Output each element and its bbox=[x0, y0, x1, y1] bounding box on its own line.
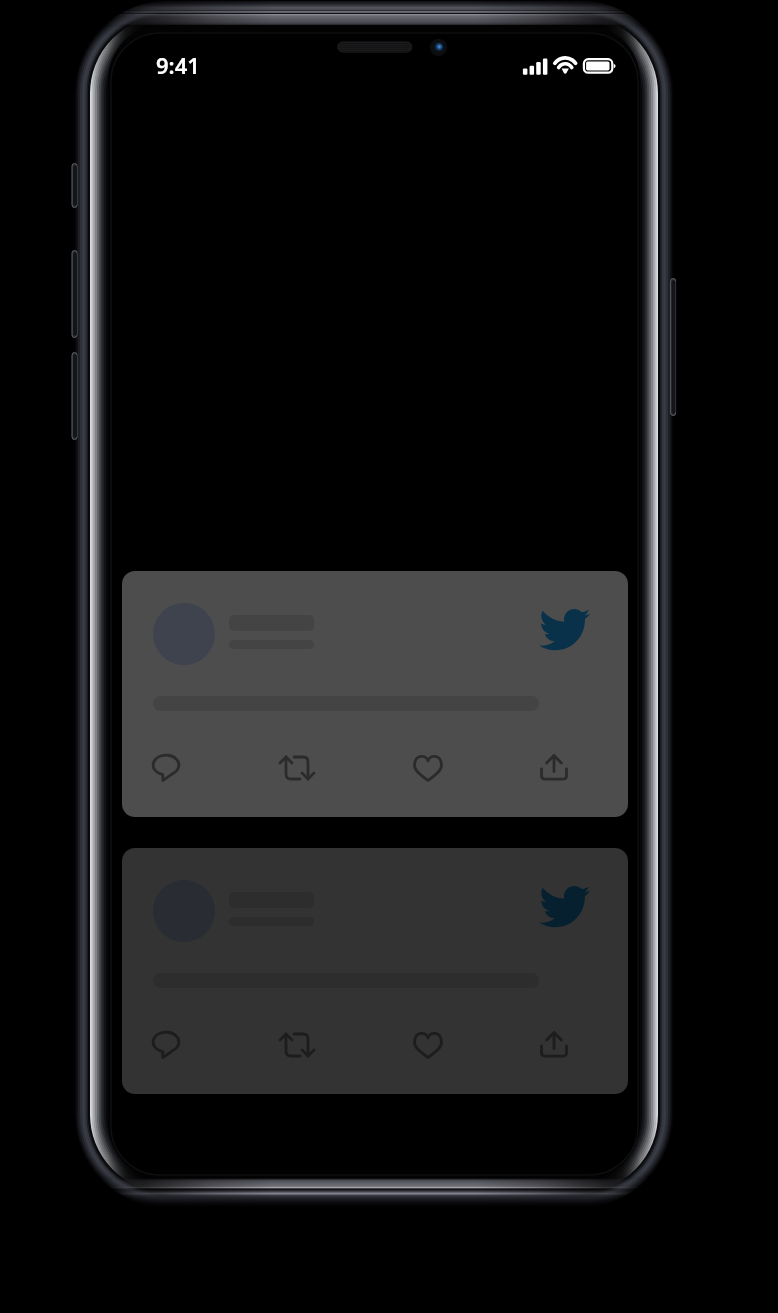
button[interactable]: Reply bbox=[122, 848, 628, 1094]
button[interactable]: Share bbox=[532, 746, 576, 790]
staticText: 9:41 bbox=[156, 50, 200, 79]
button[interactable]: Like bbox=[406, 746, 450, 790]
button[interactable]: Retweet bbox=[275, 746, 319, 790]
button[interactable]: Like bbox=[406, 1023, 450, 1067]
button[interactable]: Reply bbox=[122, 571, 628, 817]
button[interactable]: Reply bbox=[144, 1020, 188, 1064]
button[interactable]: Reply bbox=[144, 743, 188, 787]
button[interactable]: Share bbox=[532, 1023, 576, 1067]
button[interactable]: Retweet bbox=[275, 1023, 319, 1067]
